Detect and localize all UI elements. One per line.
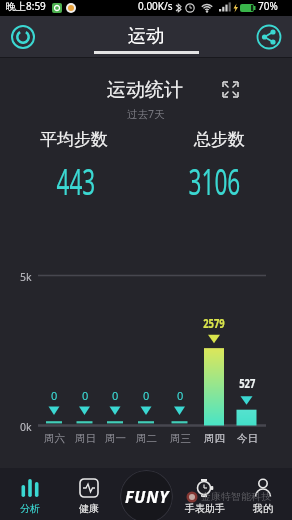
staticText: 0 bbox=[82, 388, 89, 403]
staticText: 周四 bbox=[204, 432, 225, 445]
staticText: 运动统计 bbox=[107, 78, 183, 102]
staticText: 运动 bbox=[128, 25, 164, 48]
staticText: 5k bbox=[20, 270, 32, 284]
staticText: 0.00K/s bbox=[138, 0, 173, 13]
staticText: 3106 bbox=[189, 155, 240, 205]
button[interactable] bbox=[8, 22, 38, 52]
staticText: 平均步数 bbox=[40, 129, 108, 150]
staticText: 2579 bbox=[203, 314, 225, 332]
staticText: 周日 bbox=[75, 432, 96, 445]
staticText: 健康 bbox=[79, 502, 99, 515]
button[interactable] bbox=[222, 81, 239, 98]
staticText: FUNY bbox=[125, 486, 169, 508]
button[interactable] bbox=[254, 22, 284, 52]
staticText: 70% bbox=[258, 0, 278, 13]
staticText: 分析 bbox=[20, 502, 40, 515]
staticText: 0 bbox=[143, 388, 150, 403]
staticText: 今日 bbox=[237, 432, 258, 445]
staticText: 周六 bbox=[44, 432, 65, 445]
staticText: 0 bbox=[177, 388, 184, 403]
button[interactable]: 分析 bbox=[0, 468, 59, 520]
staticText: 我的 bbox=[253, 502, 273, 515]
button[interactable]: FUNY bbox=[120, 470, 173, 520]
button[interactable]: 我的 bbox=[234, 468, 292, 520]
staticText: 晚上8:59 bbox=[6, 0, 46, 13]
staticText: 0 bbox=[51, 388, 58, 403]
staticText: 0k bbox=[20, 420, 32, 434]
staticText: 443 bbox=[56, 155, 95, 205]
staticText: 周三 bbox=[170, 432, 191, 445]
button[interactable]: 健康 bbox=[59, 468, 118, 520]
staticText: 527 bbox=[239, 374, 256, 392]
staticText: 过去7天 bbox=[127, 107, 165, 121]
staticText: 周二 bbox=[136, 432, 157, 445]
button[interactable]: 手表助手 bbox=[176, 468, 234, 520]
staticText: 手表助手 bbox=[185, 502, 225, 515]
staticText: 周一 bbox=[105, 432, 126, 445]
staticText: 金康特智能科技 bbox=[201, 490, 271, 503]
staticText: 总步数 bbox=[194, 129, 245, 150]
staticText: 0 bbox=[112, 388, 119, 403]
